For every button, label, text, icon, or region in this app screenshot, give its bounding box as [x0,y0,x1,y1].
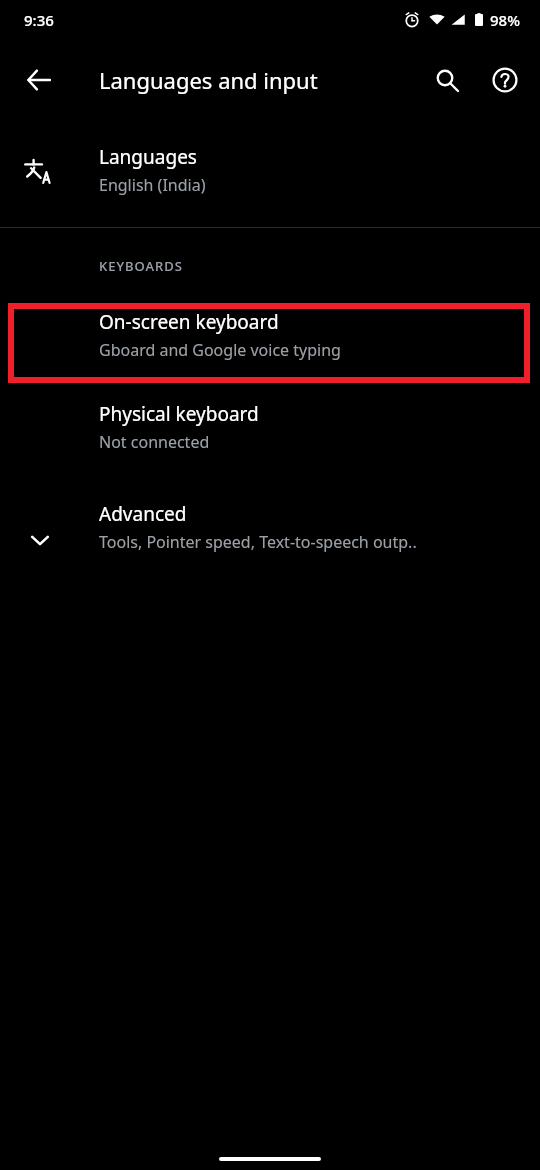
button[interactable]: Help [474,49,536,111]
staticText: Not connected [99,431,210,453]
staticText: Languages [99,144,197,170]
staticText: 9:36 [24,10,54,30]
button[interactable]: Languages [0,120,540,227]
button[interactable]: Back [7,48,71,112]
staticText: Gboard and Google voice typing [99,339,341,361]
staticText: On-screen keyboard [99,309,279,335]
button[interactable]: On-screen keyboard [0,297,540,377]
staticText: 98% [490,10,520,30]
staticText: Physical keyboard [99,401,259,427]
button[interactable]: Search [416,49,478,111]
staticText: English (India) [99,174,206,196]
staticText: Tools, Pointer speed, Text-to-speech out… [99,531,417,553]
staticText: KEYBOARDS [99,257,183,275]
button[interactable]: Expand Advanced [0,477,540,587]
button[interactable]: Physical keyboard [0,377,540,477]
other: Expand Advanced [27,527,53,553]
staticText: Advanced [99,501,187,527]
staticText: Languages and input [99,65,318,95]
